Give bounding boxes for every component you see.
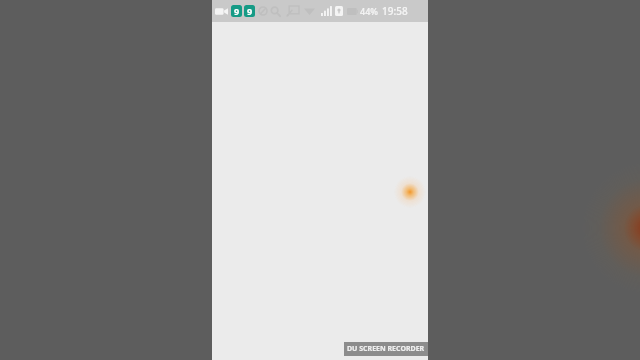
other: Screen recording — [215, 7, 228, 16]
staticText: DU SCREEN RECORDER — [347, 344, 425, 354]
staticText: 19:58 — [382, 4, 408, 18]
other: Cast screen — [287, 6, 299, 16]
button[interactable]: Status bar — [212, 0, 428, 22]
other: SIM card — [335, 6, 343, 16]
staticText: 9 — [247, 5, 253, 17]
other: Sync — [258, 6, 268, 16]
other: Signal strength — [321, 6, 333, 16]
other: Search — [270, 6, 281, 17]
staticText: 44% — [360, 5, 378, 17]
staticText: 9 — [234, 5, 240, 17]
other: Wi-Fi — [304, 7, 315, 15]
button[interactable]: DU SCREEN RECORDER — [347, 344, 425, 354]
